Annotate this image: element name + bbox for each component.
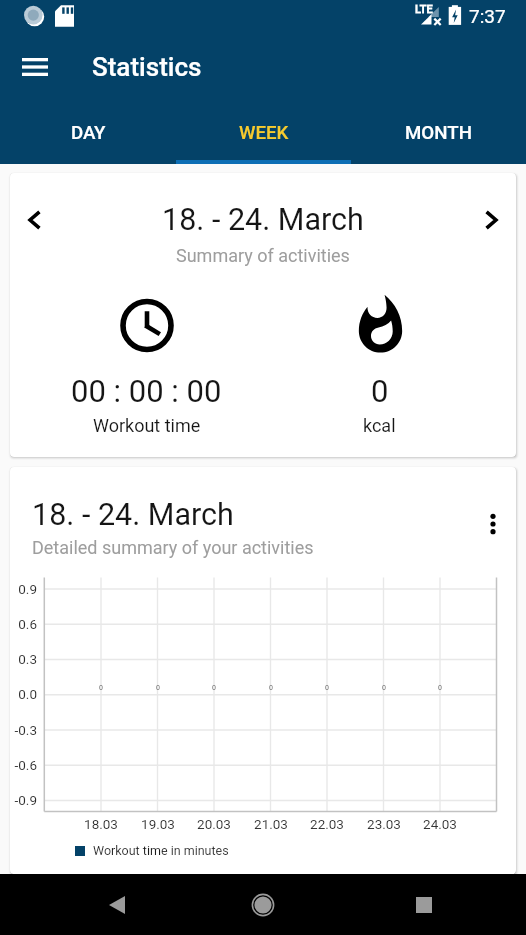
staticText: Detailed summary of your activities — [32, 537, 314, 558]
button[interactable]: Menu — [0, 32, 70, 102]
staticText: 24.03 — [415, 816, 465, 832]
staticText: Workout time — [93, 415, 201, 436]
staticText: 0 — [430, 684, 450, 692]
staticText: 0 — [204, 684, 224, 692]
staticText: WEEK — [239, 122, 289, 144]
button[interactable]: Next week — [466, 195, 516, 245]
staticText: 23.03 — [359, 816, 409, 832]
staticText: Workout time in minutes — [93, 843, 229, 858]
staticText: 0 — [148, 684, 168, 692]
button[interactable]: DAY — [0, 102, 176, 160]
staticText: 21.03 — [246, 816, 296, 832]
staticText: 0 — [261, 684, 281, 692]
staticText: 0.0 — [10, 686, 37, 702]
staticText: 0.3 — [10, 651, 37, 667]
button[interactable]: Recents — [400, 881, 448, 929]
staticText: 0 — [91, 684, 111, 692]
button[interactable]: More options — [470, 501, 516, 547]
staticText: 0 — [371, 373, 389, 409]
staticText: 18. - 24. March — [32, 497, 234, 533]
staticText: 19.03 — [133, 816, 183, 832]
staticText: LTE — [415, 3, 433, 16]
staticText: Statistics — [92, 52, 202, 82]
staticText: DAY — [71, 122, 106, 144]
button[interactable]: MONTH — [351, 102, 526, 160]
button[interactable]: WEEK — [176, 102, 351, 160]
staticText: 20.03 — [189, 816, 239, 832]
staticText: 18. - 24. March — [162, 202, 364, 238]
staticText: 00 : 00 : 00 — [71, 373, 222, 409]
staticText: 0 — [317, 684, 337, 692]
button[interactable]: Home — [239, 881, 287, 929]
staticText: 0.9 — [10, 581, 37, 597]
staticText: kcal — [363, 415, 396, 436]
staticText: -0.3 — [10, 722, 37, 738]
button[interactable]: Previous week — [10, 195, 60, 245]
button[interactable]: Back — [93, 881, 141, 929]
staticText: -0.9 — [10, 792, 37, 808]
staticText: Summary of activities — [176, 245, 350, 266]
staticText: -0.6 — [10, 757, 37, 773]
staticText: 22.03 — [302, 816, 352, 832]
staticText: 18.03 — [76, 816, 126, 832]
staticText: 0 — [374, 684, 394, 692]
staticText: 7:37 — [469, 5, 506, 27]
staticText: 0.6 — [10, 616, 37, 632]
staticText: MONTH — [405, 122, 472, 144]
